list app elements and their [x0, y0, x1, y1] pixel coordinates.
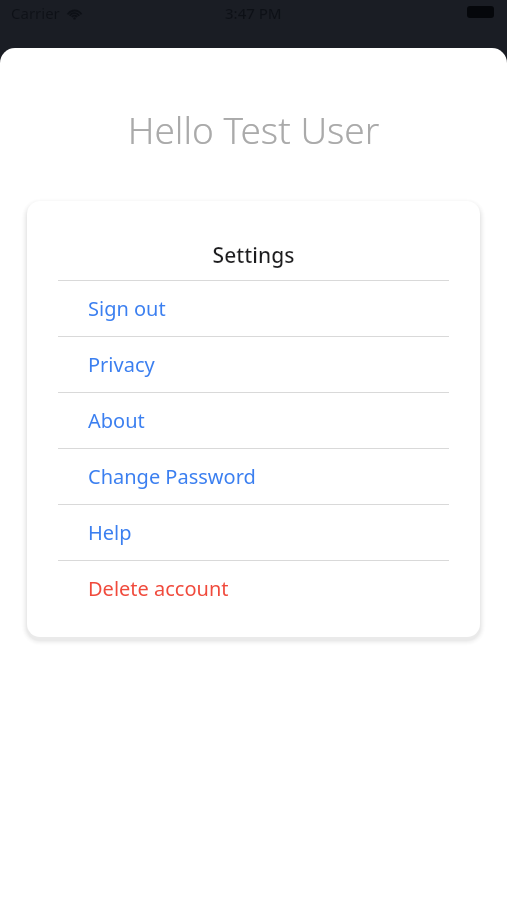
button[interactable]: Help: [27, 505, 480, 560]
staticText: Carrier: [11, 3, 60, 23]
staticText: Change Password: [88, 463, 256, 490]
staticText: Sign out: [88, 295, 166, 322]
staticText: Settings: [27, 241, 480, 270]
button[interactable]: Delete account: [27, 561, 480, 616]
staticText: Privacy: [88, 351, 155, 378]
staticText: About: [88, 407, 145, 434]
button[interactable]: Sign out: [27, 281, 480, 336]
staticText: 3:47 PM: [225, 3, 282, 23]
button[interactable]: Privacy: [27, 337, 480, 392]
staticText: Delete account: [88, 575, 229, 602]
button[interactable]: About: [27, 393, 480, 448]
button[interactable]: Change Password: [27, 449, 480, 504]
staticText: Hello Test User: [0, 104, 507, 154]
staticText: Help: [88, 519, 132, 546]
